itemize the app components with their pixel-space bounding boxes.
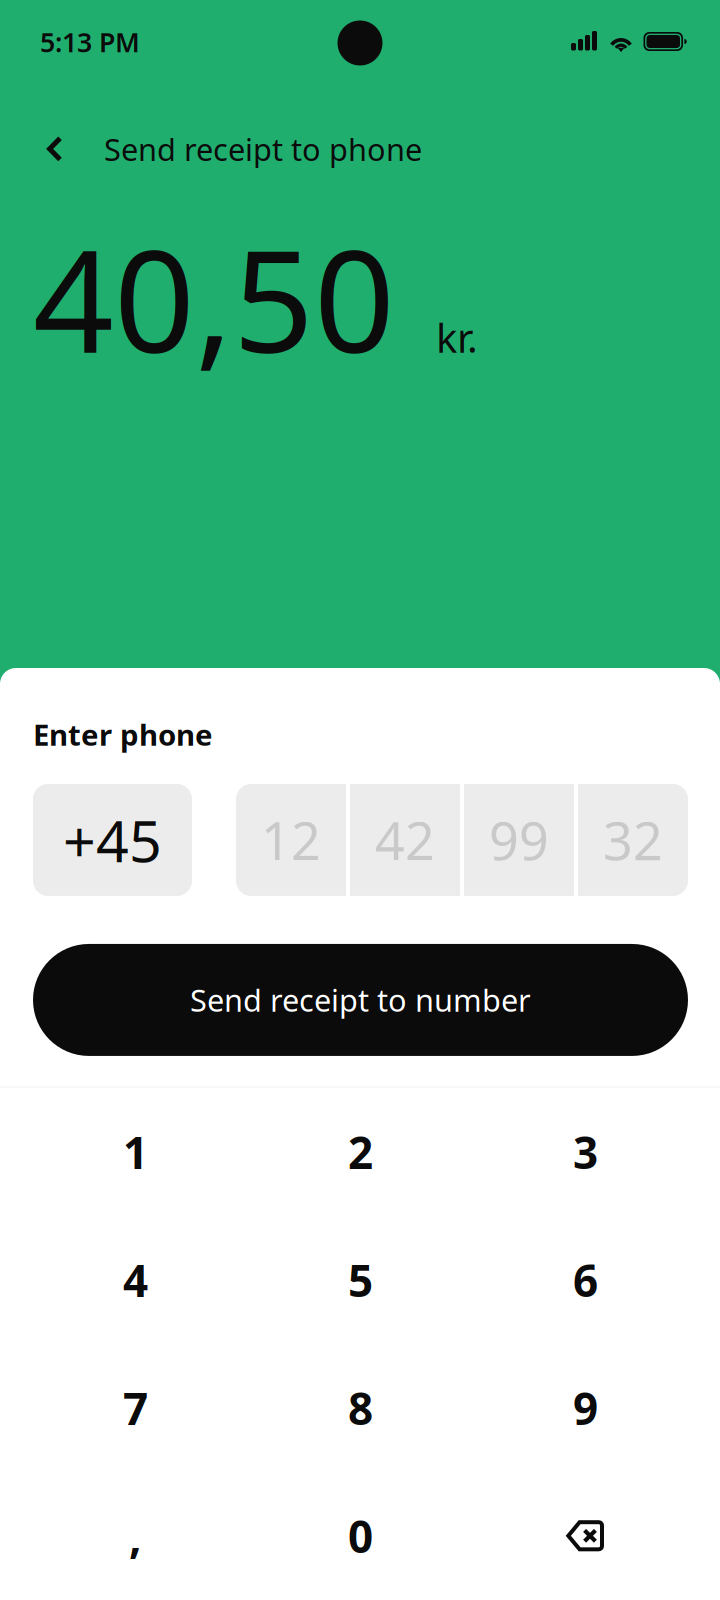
button[interactable]: Back bbox=[47, 118, 104, 180]
staticText: Enter phone bbox=[33, 715, 213, 754]
staticText: 6 bbox=[573, 1251, 598, 1309]
staticText: 8 bbox=[348, 1379, 373, 1437]
staticText: 7 bbox=[123, 1379, 148, 1437]
staticText: 1 bbox=[123, 1123, 148, 1181]
button[interactable]: Send receipt to phone bbox=[104, 118, 422, 180]
staticText: , bbox=[129, 1507, 142, 1565]
staticText: 12 bbox=[261, 805, 321, 874]
staticText: kr. bbox=[436, 311, 478, 364]
button[interactable]: 9 bbox=[473, 1344, 698, 1472]
staticText: 32 bbox=[603, 805, 663, 874]
button[interactable]: 0 bbox=[248, 1472, 473, 1600]
staticText: 2 bbox=[348, 1123, 373, 1181]
staticText: 42 bbox=[375, 805, 435, 874]
staticText: 5:13 PM bbox=[40, 24, 140, 60]
staticText: 9 bbox=[573, 1379, 598, 1437]
staticText: 5 bbox=[348, 1251, 373, 1309]
button[interactable]: 3 bbox=[473, 1088, 698, 1216]
staticText: Send receipt to phone bbox=[104, 129, 422, 169]
staticText: 99 bbox=[489, 805, 549, 874]
button[interactable]: 6 bbox=[473, 1216, 698, 1344]
button[interactable]: , bbox=[23, 1472, 248, 1600]
button[interactable]: 5 bbox=[248, 1216, 473, 1344]
button[interactable]: Delete bbox=[473, 1472, 698, 1600]
button[interactable]: Send receipt to number bbox=[33, 944, 688, 1056]
button[interactable]: 1 bbox=[23, 1088, 248, 1216]
staticText: 40,50 bbox=[33, 204, 395, 392]
staticText: 4 bbox=[123, 1251, 148, 1309]
staticText: Send receipt to number bbox=[190, 980, 531, 1020]
button[interactable]: 8 bbox=[248, 1344, 473, 1472]
staticText: 3 bbox=[573, 1123, 598, 1181]
staticText: +45 bbox=[63, 802, 162, 878]
button[interactable]: Phone number bbox=[236, 784, 688, 896]
staticText: 0 bbox=[348, 1507, 373, 1565]
button[interactable]: 2 bbox=[248, 1088, 473, 1216]
button[interactable]: 7 bbox=[23, 1344, 248, 1472]
button[interactable]: 4 bbox=[23, 1216, 248, 1344]
button[interactable]: +45 bbox=[33, 784, 192, 896]
